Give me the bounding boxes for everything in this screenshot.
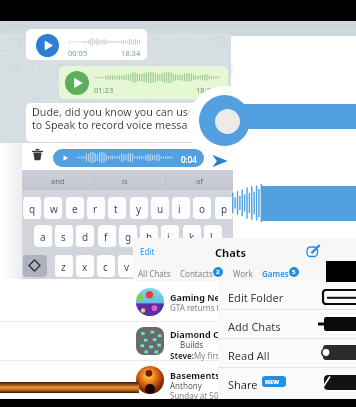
staticText: 01:23 bbox=[94, 85, 114, 95]
staticText: is bbox=[122, 176, 128, 186]
button[interactable]: i bbox=[172, 197, 190, 219]
button[interactable]: k bbox=[183, 225, 201, 247]
staticText: l bbox=[210, 230, 213, 244]
staticText: 18:34 bbox=[196, 85, 216, 95]
button[interactable]: Share bbox=[218, 368, 356, 397]
button[interactable]: v bbox=[118, 255, 136, 277]
staticText: d bbox=[82, 230, 89, 244]
staticText: Steve: bbox=[170, 350, 195, 361]
button[interactable]: q bbox=[23, 197, 41, 219]
other: Folder bbox=[322, 289, 356, 305]
staticText: y bbox=[136, 202, 142, 216]
button[interactable]: Shift bbox=[23, 255, 47, 277]
staticText: Anthony bbox=[170, 380, 202, 391]
staticText: Contacts bbox=[180, 268, 213, 279]
button[interactable]: z bbox=[55, 255, 73, 277]
button[interactable]: Add Chats bbox=[218, 310, 356, 339]
staticText: Sunday at 50? bbox=[170, 390, 222, 401]
staticText: NEW bbox=[265, 378, 280, 386]
staticText: p bbox=[221, 202, 228, 216]
button[interactable]: a bbox=[34, 225, 52, 247]
staticText: 00:05 bbox=[68, 48, 88, 58]
staticText: to Speak to record voice messages? bbox=[32, 118, 210, 133]
button[interactable]: t bbox=[108, 197, 126, 219]
staticText: c bbox=[103, 260, 108, 274]
staticText: Gaming New bbox=[170, 291, 228, 303]
staticText: Dude, did you know you can use Raise bbox=[32, 105, 224, 120]
staticText: a bbox=[40, 230, 46, 244]
button[interactable] bbox=[133, 361, 356, 399]
staticText: h bbox=[146, 230, 153, 244]
staticText: Edit bbox=[140, 246, 155, 257]
staticText: e bbox=[72, 202, 78, 216]
staticText: 0:04 bbox=[181, 154, 197, 165]
staticText: g bbox=[125, 230, 132, 244]
button[interactable]: y bbox=[130, 197, 148, 219]
staticText: of bbox=[196, 176, 204, 186]
button[interactable]: g bbox=[119, 225, 137, 247]
button[interactable]: d bbox=[76, 225, 94, 247]
button[interactable] bbox=[133, 283, 356, 321]
staticText: j bbox=[167, 230, 170, 244]
staticText: Edit Folder bbox=[228, 290, 284, 305]
button[interactable]: b bbox=[140, 255, 158, 277]
other: Delete recording bbox=[31, 148, 44, 161]
button[interactable]: r bbox=[87, 197, 105, 219]
button[interactable] bbox=[133, 322, 356, 360]
staticText: s bbox=[61, 230, 66, 244]
button[interactable]: c bbox=[97, 255, 115, 277]
staticText: 18:34 bbox=[121, 48, 141, 58]
staticText: k bbox=[189, 230, 195, 244]
staticText: and bbox=[51, 176, 65, 186]
staticText: Work bbox=[233, 268, 253, 279]
staticText: Chats bbox=[215, 245, 247, 260]
staticText: n bbox=[167, 260, 174, 274]
button[interactable]: f bbox=[98, 225, 116, 247]
staticText: All Chats bbox=[138, 268, 171, 279]
staticText: q bbox=[29, 202, 36, 216]
other: Read all bbox=[319, 345, 356, 360]
staticText: b bbox=[146, 260, 153, 274]
staticText: m bbox=[188, 260, 198, 274]
other: Send bbox=[212, 154, 228, 168]
staticText: x bbox=[82, 260, 88, 274]
button[interactable]: w bbox=[44, 197, 62, 219]
staticText: Add Chats bbox=[228, 319, 281, 334]
button[interactable]: n bbox=[161, 255, 179, 277]
staticText: 5 bbox=[292, 268, 296, 276]
button[interactable]: j bbox=[161, 225, 179, 247]
staticText: Read All bbox=[228, 348, 270, 363]
staticText: o bbox=[199, 202, 206, 216]
button[interactable]: Edit Folder bbox=[218, 281, 356, 310]
staticText: r bbox=[93, 202, 98, 216]
staticText: 18:34 bbox=[209, 130, 226, 139]
staticText: Diamond Clu bbox=[170, 328, 228, 340]
staticText: v bbox=[124, 260, 130, 274]
staticText: u bbox=[157, 202, 164, 216]
button[interactable]: m bbox=[182, 255, 200, 277]
staticText: t bbox=[114, 202, 118, 216]
button[interactable]: s bbox=[55, 225, 73, 247]
other: Share bbox=[319, 375, 356, 390]
button[interactable]: x bbox=[76, 255, 94, 277]
staticText: i bbox=[178, 202, 181, 216]
staticText: Builds bbox=[180, 339, 204, 350]
staticText: My firs bbox=[194, 350, 220, 361]
button[interactable]: Read All bbox=[218, 339, 356, 368]
other: Add chats bbox=[318, 317, 356, 331]
staticText: GTA returns to bbox=[170, 302, 225, 313]
staticText: z bbox=[61, 260, 66, 274]
staticText: Basements a bbox=[170, 369, 228, 381]
staticText: w bbox=[50, 202, 58, 216]
button[interactable]: l bbox=[204, 225, 222, 247]
staticText: Share bbox=[228, 377, 258, 392]
button[interactable]: u bbox=[151, 197, 169, 219]
button[interactable]: o bbox=[193, 197, 211, 219]
button[interactable]: p bbox=[215, 197, 233, 219]
staticText: f bbox=[104, 230, 108, 244]
staticText: 2 bbox=[216, 268, 220, 276]
button[interactable]: e bbox=[66, 197, 84, 219]
button[interactable]: h bbox=[140, 225, 158, 247]
other: New message bbox=[306, 244, 320, 258]
staticText: Games bbox=[262, 268, 289, 279]
